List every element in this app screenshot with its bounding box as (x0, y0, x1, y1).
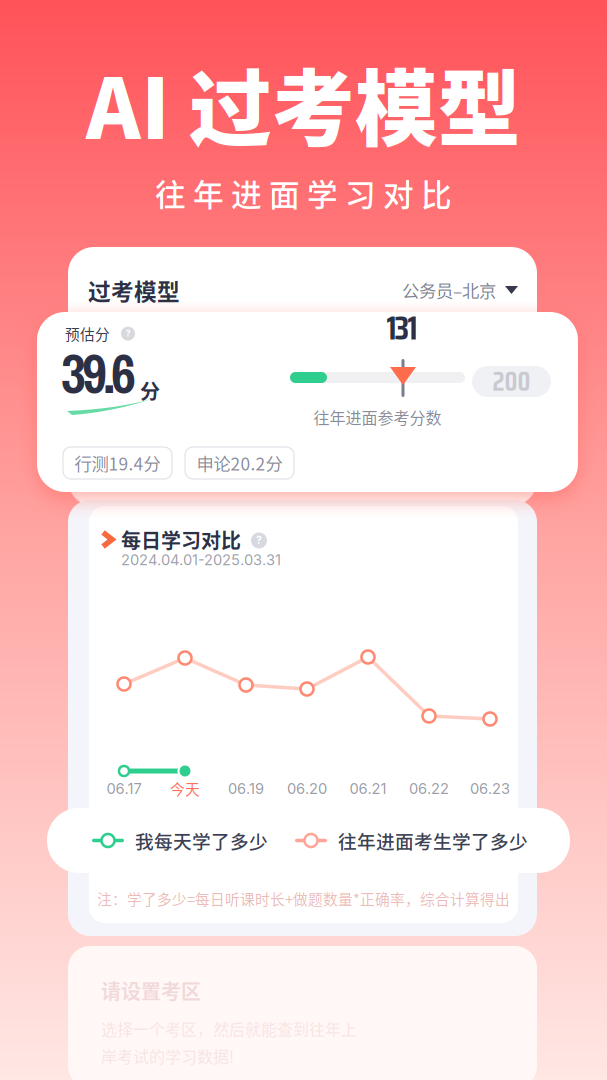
staticText: 每日学习对比 (121, 525, 241, 554)
staticText: 200 (492, 360, 530, 402)
staticText: 39.6 (61, 336, 136, 410)
staticText: 选择一个考区，然后就能查到往年上 (101, 1017, 357, 1040)
staticText: 131 (386, 302, 417, 354)
staticText: 06.19 (228, 780, 264, 797)
staticText: 过考模型 (88, 274, 180, 307)
staticText: 往年进面考生学了多少 (338, 827, 528, 854)
staticText: 申论20.2分 (196, 450, 282, 476)
staticText: 06.22 (409, 780, 449, 797)
staticText: 06.20 (287, 780, 327, 797)
button[interactable]: 公务员–北京 (402, 277, 518, 303)
staticText: AI 过考模型 (86, 43, 521, 163)
staticText: 请设置考区 (101, 976, 201, 1005)
staticText: 06.23 (470, 780, 510, 797)
staticText: 岸考试的学习数据! (101, 1044, 234, 1067)
staticText: 06.21 (349, 780, 386, 797)
staticText: ? (256, 533, 262, 546)
staticText: 注：学了多少=每日听课时长+做题数量*正确率，综合计算得出 (97, 888, 510, 909)
staticText: 06.17 (106, 780, 141, 797)
staticText: 往 年 进 面 学 习 对 比 (155, 171, 452, 215)
staticText: ? (125, 327, 130, 339)
staticText: 2024.04.01-2025.03.31 (121, 551, 281, 569)
staticText: 今天 (170, 778, 200, 799)
staticText: 我每天学了多少 (135, 827, 268, 854)
staticText: 分 (140, 376, 160, 405)
staticText: 公务员–北京 (402, 277, 496, 303)
staticText: 预估分 (65, 323, 110, 344)
staticText: 行测19.4分 (74, 450, 160, 476)
staticText: 往年进面参考分数 (313, 405, 441, 429)
